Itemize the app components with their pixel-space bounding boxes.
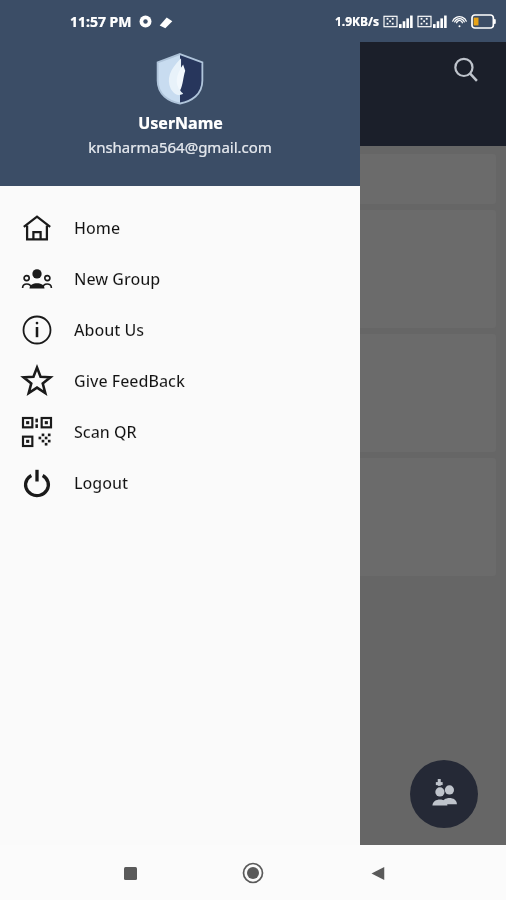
staticText: About Us bbox=[74, 319, 145, 341]
staticText: Home bbox=[74, 217, 121, 239]
button[interactable]: Logout bbox=[0, 457, 360, 508]
button[interactable]: Home bbox=[229, 849, 277, 897]
button[interactable]: Search bbox=[444, 48, 488, 92]
staticText: New Group bbox=[74, 268, 161, 290]
button[interactable]: Scan QR bbox=[0, 406, 360, 457]
staticText: Give FeedBack bbox=[74, 370, 185, 392]
button[interactable]: About Us bbox=[0, 304, 360, 355]
button[interactable]: Back bbox=[353, 849, 401, 897]
staticText: knsharma564@gmail.com bbox=[88, 137, 272, 157]
button[interactable]: Give FeedBack bbox=[0, 355, 360, 406]
staticText: Scan QR bbox=[74, 421, 137, 443]
staticText: UserName bbox=[138, 112, 223, 134]
button[interactable]: Recents bbox=[106, 849, 154, 897]
staticText: 1.9KB/s bbox=[335, 13, 380, 29]
staticText: 11:57 PM bbox=[70, 12, 132, 31]
button[interactable]: Home bbox=[0, 202, 360, 253]
button[interactable]: New Group bbox=[0, 253, 360, 304]
button[interactable]: Add group bbox=[410, 760, 478, 828]
staticText: Logout bbox=[74, 472, 129, 494]
